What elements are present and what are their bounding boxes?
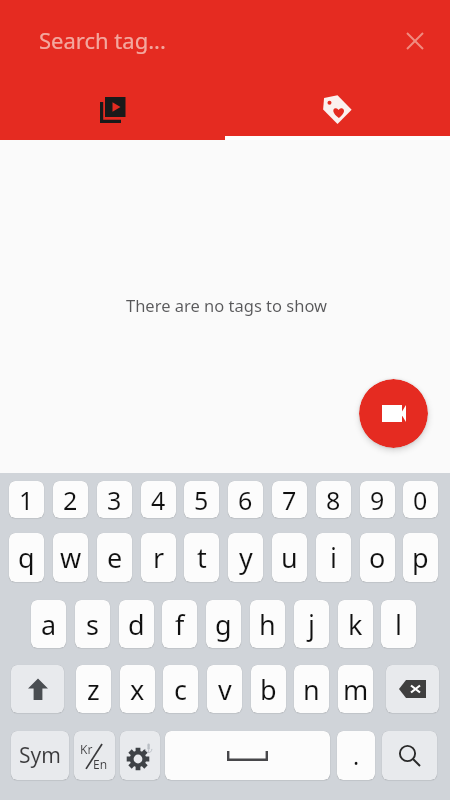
button[interactable]: 7 [272,481,307,518]
button[interactable]: k [338,600,373,648]
staticText: o [369,539,386,576]
staticText: 1 [19,483,34,517]
staticText: y [239,539,253,576]
button[interactable]: 8 [316,481,351,518]
button[interactable]: r [141,533,176,582]
button[interactable]: x [120,665,155,713]
staticText: k [348,606,363,643]
button[interactable]: t [184,533,219,582]
button[interactable]: 3 [97,481,132,518]
button[interactable]: o [360,533,395,582]
button[interactable]: Space [165,731,330,780]
staticText: u [281,539,298,576]
staticText: f [175,606,185,643]
button[interactable]: Keyboard settings [120,731,160,780]
button[interactable]: Record video [359,379,428,448]
staticText: 7 [282,483,297,517]
staticText: Kr [80,741,93,757]
button[interactable]: 5 [184,481,219,518]
staticText: l [395,606,402,643]
button[interactable]: s [75,600,110,648]
button[interactable]: p [403,533,438,582]
button[interactable]: Tags tab [225,82,450,137]
button[interactable]: m [338,665,373,713]
staticText: z [87,671,100,708]
button[interactable]: g [206,600,241,648]
staticText: v [218,671,232,708]
button[interactable]: i [316,533,351,582]
staticText: . [353,740,360,771]
button[interactable]: c [163,665,198,713]
staticText: d [128,606,145,643]
staticText: 2 [63,483,78,517]
button[interactable]: Clear search [395,21,435,61]
staticText: b [260,671,277,708]
staticText: n [303,671,320,708]
button[interactable]: Change language [74,731,115,780]
button[interactable]: Search [382,731,437,780]
staticText: p [412,539,429,576]
staticText: i [330,539,337,576]
button[interactable]: 4 [141,481,176,518]
staticText: c [174,671,187,708]
staticText: Sym [19,741,61,770]
staticText: j [308,606,315,643]
staticText: g [215,606,232,643]
staticText: a [41,606,57,643]
button[interactable]: l [381,600,416,648]
staticText: 3 [107,483,122,517]
button[interactable]: u [272,533,307,582]
button[interactable]: a [31,600,66,648]
button[interactable]: Shift [11,665,64,713]
staticText: 9 [370,483,385,517]
button[interactable]: d [119,600,154,648]
button[interactable]: 1 [9,481,44,518]
button[interactable]: 6 [228,481,263,518]
staticText: h [259,606,276,643]
staticText: t [197,539,207,576]
staticText: r [153,539,165,576]
button[interactable]: 2 [53,481,88,518]
button[interactable]: q [9,533,44,582]
button[interactable]: j [294,600,329,648]
button[interactable]: h [250,600,285,648]
staticText: m [343,671,369,708]
button[interactable]: e [97,533,132,582]
staticText: En [93,756,108,772]
staticText: e [107,539,123,576]
staticText: 0 [413,483,428,517]
staticText: There are no tags to show [126,294,328,316]
button[interactable]: 9 [360,481,395,518]
button[interactable]: w [53,533,88,582]
staticText: x [130,671,145,708]
staticText: 6 [238,483,253,517]
staticText: s [86,606,99,643]
button[interactable]: n [294,665,329,713]
staticText: w [60,539,82,576]
staticText: Search tag... [39,25,166,55]
button[interactable]: b [251,665,286,713]
staticText: 4 [151,483,166,517]
button[interactable]: Sym [11,731,69,780]
button[interactable]: 0 [403,481,438,518]
button[interactable]: Videos tab [0,82,225,137]
staticText: 8 [326,483,341,517]
button[interactable]: y [228,533,263,582]
button[interactable]: v [207,665,242,713]
button[interactable]: Backspace [386,665,439,713]
button[interactable]: f [162,600,197,648]
button[interactable]: . [337,731,375,780]
staticText: q [18,539,35,576]
staticText: 5 [194,483,209,517]
button[interactable]: z [76,665,111,713]
